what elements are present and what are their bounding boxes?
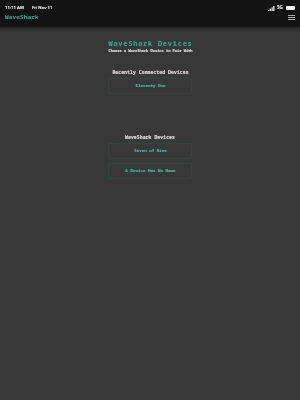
staticText: Recently Connected Devices: [112, 69, 189, 75]
staticText: Eleventy One: [135, 83, 166, 89]
other: Battery full: [286, 6, 295, 10]
button[interactable]: Seven of Nine: [108, 143, 192, 159]
staticText: 5G: [277, 4, 283, 10]
staticText: Seven of Nine: [134, 148, 167, 154]
staticText: WaveShark Devices: [108, 39, 193, 49]
button[interactable]: A Device Has No Name: [108, 163, 192, 179]
staticText: 11:11 AM: [5, 4, 24, 10]
staticText: WaveShark Devices: [125, 134, 175, 140]
other: Cellular signal: [268, 6, 275, 11]
staticText: WaveShark: [5, 13, 39, 21]
staticText: A Device Has No Name: [125, 168, 176, 174]
staticText: Choose a WaveShark Device to Pair With: [108, 48, 193, 53]
button[interactable]: Eleventy One: [108, 78, 192, 94]
button[interactable]: Open navigation menu: [286, 12, 297, 23]
staticText: Fri Nov 11: [32, 4, 53, 10]
